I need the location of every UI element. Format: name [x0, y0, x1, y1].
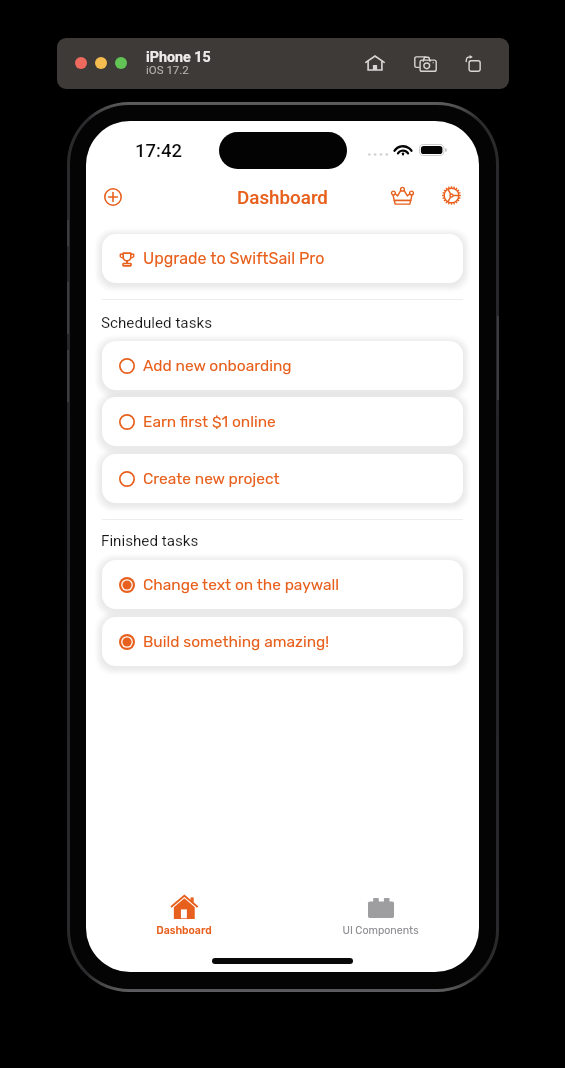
button[interactable]: Close [75, 57, 87, 69]
staticText: Dashboard [156, 924, 212, 937]
button[interactable]: Minimise [95, 57, 107, 69]
staticText: iPhone 15 [146, 49, 211, 66]
button[interactable]: Dashboard [86, 889, 282, 945]
button[interactable]: UI Components [282, 889, 479, 945]
button[interactable]: Build something amazing! [102, 617, 463, 666]
staticText: Upgrade to SwiftSail Pro [143, 249, 325, 268]
button[interactable]: Rotate [455, 46, 489, 80]
button[interactable]: Home [358, 46, 392, 80]
staticText: Build something amazing! [143, 633, 330, 651]
staticText: Create new project [143, 470, 280, 488]
button[interactable]: Add task [95, 179, 131, 215]
staticText: Dashboard [237, 187, 328, 209]
staticText: Scheduled tasks [101, 314, 213, 332]
button[interactable]: Settings [433, 177, 469, 213]
staticText: Change text on the paywall [143, 576, 340, 594]
button[interactable]: Upgrade to SwiftSail Pro [102, 234, 463, 283]
staticText: Add new onboarding [143, 357, 292, 375]
staticText: iOS 17.2 [146, 63, 189, 76]
button[interactable]: Change text on the paywall [102, 560, 463, 609]
button[interactable]: Create new project [102, 454, 463, 503]
staticText: Finished tasks [101, 532, 199, 550]
button[interactable]: Premium [384, 177, 420, 213]
staticText: 17:42 [135, 140, 182, 162]
button[interactable]: Add new onboarding [102, 341, 463, 390]
button[interactable]: Screenshot [408, 46, 442, 80]
button[interactable]: Earn first $1 online [102, 397, 463, 446]
button[interactable]: Maximise [115, 57, 127, 69]
staticText: Earn first $1 online [143, 413, 276, 431]
staticText: UI Components [342, 924, 419, 937]
